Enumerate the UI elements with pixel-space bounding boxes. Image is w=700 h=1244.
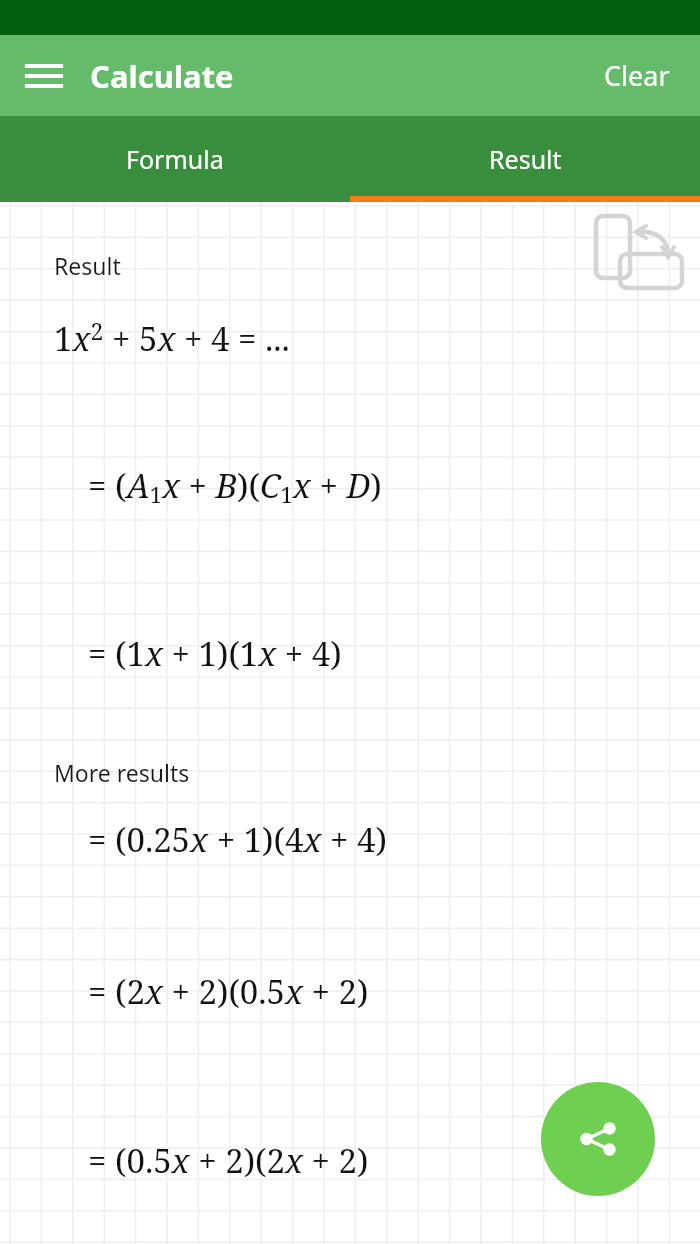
button[interactable]: Share <box>541 1082 655 1196</box>
staticText: Calculate <box>90 55 234 97</box>
staticText: Clear <box>604 57 670 94</box>
staticText: Result <box>489 142 562 176</box>
button[interactable]: Clear <box>586 47 688 104</box>
staticText: More results <box>54 757 190 788</box>
staticText: = (0.25x + 1)(4x + 4) <box>88 817 387 862</box>
button[interactable]: Open navigation menu <box>16 48 72 104</box>
button[interactable]: Formula <box>0 116 350 202</box>
staticText: Formula <box>126 142 224 176</box>
staticText: 1x2 + 5x + 4 = ... <box>54 315 290 361</box>
button[interactable]: Rotate device <box>594 214 672 282</box>
staticText: = (A1x + B)(C1x + D) <box>88 463 382 510</box>
button[interactable]: Result <box>350 116 700 202</box>
staticText: = (2x + 2)(0.5x + 2) <box>88 969 369 1014</box>
staticText: Result <box>54 250 121 281</box>
staticText: = (1x + 1)(1x + 4) <box>88 631 342 676</box>
staticText: = (0.5x + 2)(2x + 2) <box>88 1138 369 1183</box>
